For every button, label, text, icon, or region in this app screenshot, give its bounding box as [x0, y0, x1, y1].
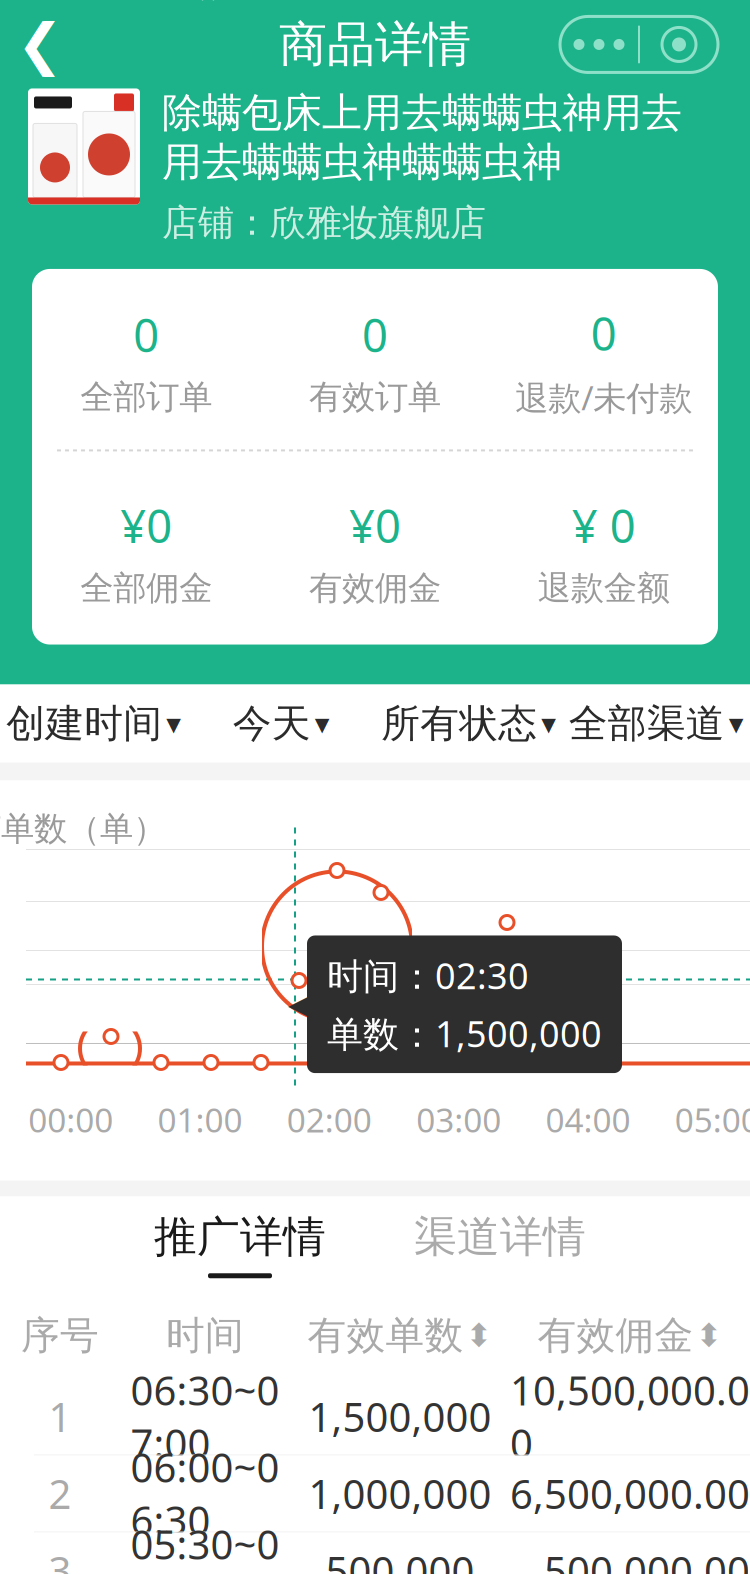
staticText: 03:00	[416, 1097, 501, 1142]
staticText: 05:30~06:00	[130, 1517, 279, 1574]
staticText: 06:30~07:00	[130, 1363, 279, 1470]
staticText: ▾	[541, 707, 556, 740]
staticText: ¥0	[120, 495, 172, 556]
staticText: 渠道详情	[414, 1211, 586, 1263]
staticText: ▾	[315, 707, 330, 740]
staticText: ¥ 0	[572, 495, 636, 556]
staticText: 00:00	[28, 1097, 113, 1142]
staticText: 推广详情	[154, 1211, 326, 1263]
staticText: ⬍	[465, 1317, 492, 1354]
staticText: 序号	[21, 1312, 99, 1359]
staticText: 01:00	[157, 1097, 242, 1142]
staticText: 6,500,000.00	[510, 1467, 750, 1520]
staticText: ¥0	[349, 495, 401, 556]
button[interactable]: 有效佣金	[510, 1300, 750, 1370]
staticText: 全部渠道	[569, 700, 725, 747]
staticText: 10,500,000.00	[510, 1363, 750, 1470]
staticText: 创建时间	[6, 700, 162, 747]
staticText: 04:00	[545, 1097, 630, 1142]
staticText: 500,000	[325, 1544, 474, 1574]
staticText: 商品详情	[279, 15, 471, 74]
button[interactable]: Target	[640, 16, 718, 72]
staticText: ❮	[16, 13, 63, 76]
staticText: 单数：1,500,000	[327, 1009, 602, 1057]
staticText: 全部订单	[80, 377, 212, 418]
staticText: 退款/未付款	[515, 375, 692, 419]
staticText: 1	[48, 1390, 71, 1443]
staticText: 3	[48, 1544, 71, 1574]
staticText: 有效单数	[307, 1312, 463, 1359]
staticText: 0	[362, 305, 388, 365]
staticText: 有效佣金	[309, 568, 441, 608]
staticText: 500,000.00	[544, 1544, 750, 1574]
staticText: ▾	[729, 707, 744, 740]
button[interactable]: 创建时间	[0, 684, 187, 762]
staticText: ▾	[166, 707, 181, 740]
staticText: 05:00	[675, 1097, 750, 1142]
staticText: 全部佣金	[80, 568, 212, 608]
button[interactable]: 有效单数	[290, 1300, 510, 1370]
staticText: 退款金额	[538, 568, 670, 608]
staticText: ◀	[288, 988, 311, 1021]
button[interactable]: 今天	[187, 684, 375, 762]
button[interactable]: 所有状态	[375, 684, 562, 762]
button[interactable]: 渠道详情	[410, 1196, 590, 1292]
button[interactable]: More options	[560, 16, 638, 72]
staticText: 0	[591, 303, 617, 363]
staticText: 店铺：欣雅妆旗舰店	[162, 201, 486, 245]
staticText: 06:00~06:30	[130, 1440, 279, 1547]
button[interactable]: 推广详情	[150, 1196, 330, 1292]
staticText: 时间：02:30	[327, 951, 529, 999]
button[interactable]: Back	[0, 8, 80, 80]
staticText: 今天	[233, 700, 311, 747]
staticText: 0	[133, 305, 159, 365]
staticText: 有效佣金	[537, 1312, 693, 1359]
staticText: 所有状态	[381, 700, 537, 747]
staticText: 2	[48, 1467, 71, 1520]
staticText: ⬍	[695, 1317, 722, 1354]
staticText: 订单数（单）	[0, 808, 166, 849]
staticText: 1,000,000	[308, 1467, 491, 1520]
staticText: 有效订单	[309, 377, 441, 418]
staticText: 1,500,000	[308, 1390, 491, 1443]
staticText: 除螨包床上用去螨螨虫神用去用去螨螨虫神螨螨虫神	[162, 88, 682, 187]
button[interactable]: 全部渠道	[562, 684, 750, 762]
staticText: 时间	[166, 1312, 244, 1359]
staticText: 02:00	[287, 1097, 372, 1142]
